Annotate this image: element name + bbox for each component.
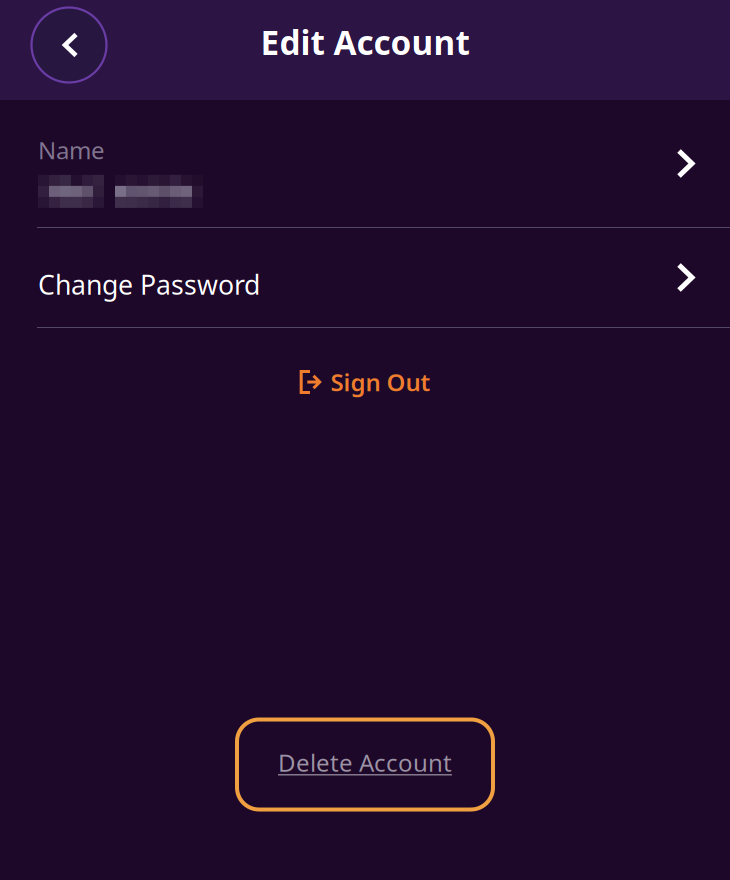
button[interactable]: Name (0, 100, 730, 227)
button[interactable]: Back (19, 0, 119, 105)
staticText: Edit Account (260, 20, 469, 64)
button[interactable]: Change Password (0, 228, 730, 327)
staticText: Sign Out (330, 366, 430, 398)
staticText: Name (38, 134, 105, 166)
button[interactable]: Delete Account (237, 719, 493, 809)
button[interactable]: Sign Out (299, 328, 430, 412)
staticText: Delete Account (278, 747, 452, 778)
staticText: Change Password (38, 267, 260, 302)
